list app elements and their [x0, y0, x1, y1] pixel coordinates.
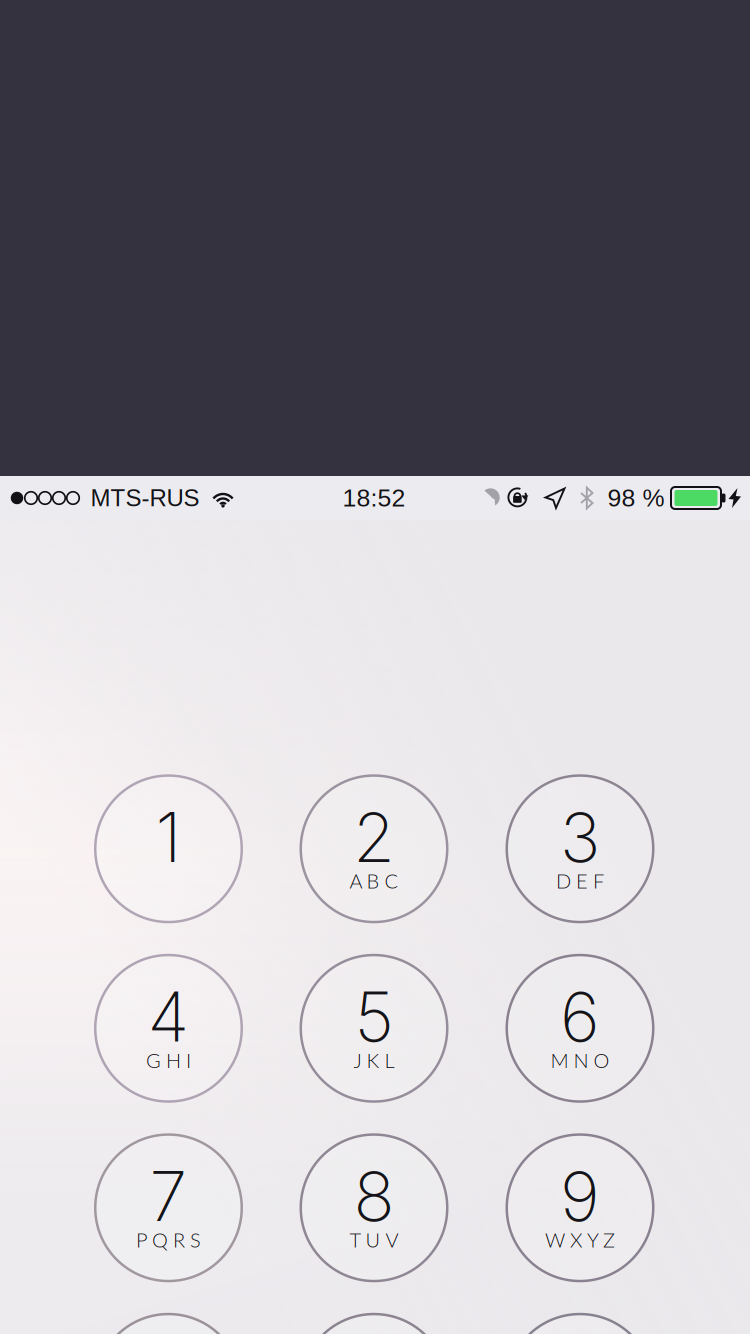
staticText: 18:52 [342, 484, 405, 512]
staticText: W X Y Z [545, 1228, 615, 1252]
button[interactable] [95, 1314, 242, 1334]
staticText: 8 [353, 1155, 394, 1237]
button[interactable]: 6 [507, 955, 653, 1101]
button[interactable]: 2 [301, 775, 447, 922]
staticText: D E F [556, 869, 604, 893]
staticText: P Q R S [136, 1228, 201, 1252]
button[interactable]: 5 [301, 955, 447, 1101]
button[interactable]: 7 [95, 1134, 242, 1281]
staticText: G H I [146, 1048, 191, 1072]
staticText: 6 [560, 976, 600, 1058]
button[interactable]: 3 [507, 775, 653, 922]
button[interactable]: 9 [507, 1134, 653, 1281]
staticText: MTS-RUS [90, 485, 199, 511]
button[interactable]: 0 [301, 1314, 447, 1334]
staticText: J K L [353, 1048, 394, 1072]
staticText: 98 % [607, 484, 664, 512]
staticText: 7 [149, 1155, 187, 1237]
staticText: M N O [550, 1048, 609, 1072]
staticText: 1 [155, 796, 181, 878]
staticText: T U V [349, 1228, 398, 1252]
staticText: 3 [560, 796, 600, 878]
button[interactable] [507, 1314, 653, 1334]
staticText: A B C [349, 869, 398, 893]
button[interactable]: 1 [95, 775, 242, 922]
button[interactable]: 8 [301, 1134, 447, 1281]
staticText: 9 [560, 1155, 600, 1237]
staticText: 4 [147, 976, 189, 1058]
staticText: 2 [353, 796, 395, 878]
button[interactable]: 4 [95, 955, 242, 1101]
staticText: 5 [354, 976, 393, 1058]
